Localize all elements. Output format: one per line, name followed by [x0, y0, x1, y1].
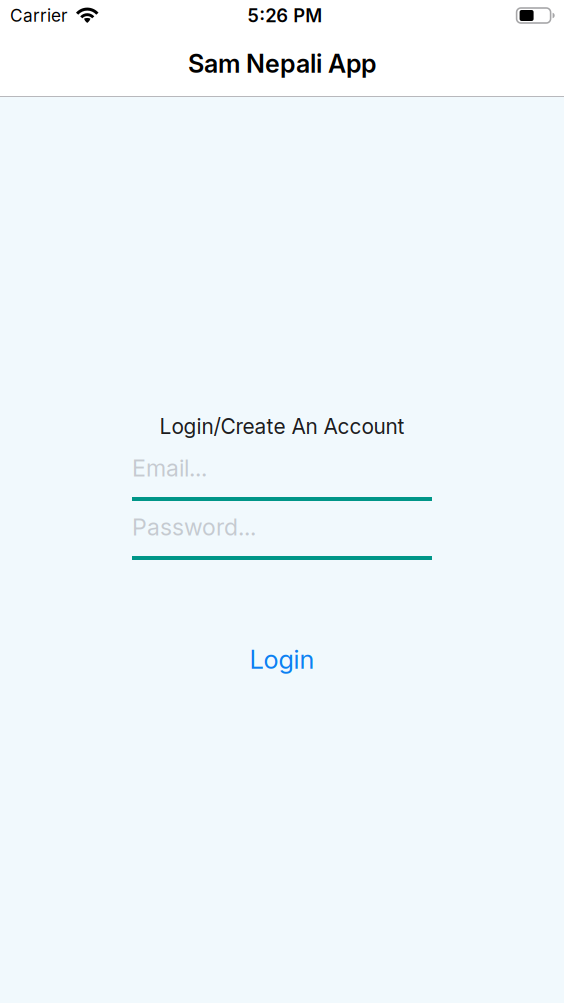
staticText: Login/Create An Account	[159, 414, 404, 439]
staticText: Sam Nepali App	[188, 48, 376, 79]
staticText: 5:26 PM	[247, 4, 322, 27]
staticText: Login	[249, 644, 314, 675]
staticText: Password...	[132, 513, 256, 541]
button[interactable]: Password...	[132, 513, 432, 560]
staticText: Email...	[132, 454, 207, 482]
button[interactable]: Email...	[132, 454, 432, 501]
staticText: Carrier	[10, 5, 67, 26]
button[interactable]: Login	[233, 635, 330, 684]
